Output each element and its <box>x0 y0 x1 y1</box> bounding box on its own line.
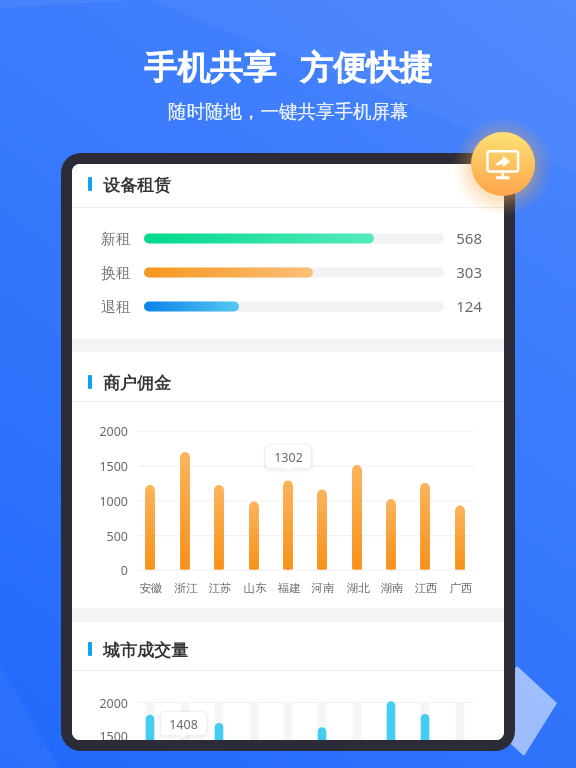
staticText: 1408 <box>161 716 206 733</box>
staticText: 山东 <box>225 581 285 595</box>
staticText: 设备租赁 <box>103 175 171 196</box>
staticText: 湖南 <box>362 581 422 595</box>
staticText: 城市成交量 <box>103 640 188 661</box>
staticText: 安徽 <box>121 581 181 595</box>
staticText: 随时随地，一键共享手机屏幕 <box>168 100 409 123</box>
staticText: 浙江 <box>156 581 216 595</box>
button[interactable] <box>72 352 504 608</box>
button[interactable]: Share screen <box>471 132 535 196</box>
staticText: 1302 <box>266 449 311 466</box>
staticText: 568 <box>412 228 482 248</box>
button[interactable] <box>72 622 504 740</box>
staticText: 江西 <box>396 581 456 595</box>
staticText: 河南 <box>293 581 353 595</box>
staticText: 广西 <box>431 581 491 595</box>
staticText: 手机共享 <box>144 47 276 89</box>
staticText: 换租 <box>101 264 131 283</box>
staticText: 1500 <box>72 458 128 475</box>
staticText: 1000 <box>72 493 128 510</box>
staticText: 商户佣金 <box>103 373 171 394</box>
staticText: 1500 <box>72 728 128 740</box>
staticText: 124 <box>412 296 482 316</box>
staticText: 2000 <box>72 423 128 440</box>
staticText: 湖北 <box>328 581 388 595</box>
staticText: 新租 <box>101 230 131 249</box>
staticText: 方便快捷 <box>300 47 432 89</box>
staticText: 退租 <box>101 298 131 317</box>
staticText: 303 <box>412 262 482 282</box>
button[interactable] <box>72 164 504 339</box>
staticText: 500 <box>72 528 128 545</box>
staticText: 福建 <box>259 581 319 595</box>
staticText: 0 <box>72 562 128 579</box>
staticText: 江苏 <box>190 581 250 595</box>
staticText: 2000 <box>72 695 128 712</box>
